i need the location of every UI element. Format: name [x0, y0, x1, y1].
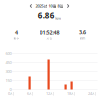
staticText: 3.6: [79, 29, 86, 36]
staticText: 300: [5, 69, 11, 74]
staticText: 6.86: [38, 10, 55, 21]
staticText: 24시: [88, 91, 96, 96]
staticText: 12시: [46, 91, 54, 96]
staticText: 600: [5, 51, 11, 56]
button[interactable]: Previous day: [29, 3, 32, 9]
staticText: km/h: [79, 37, 85, 40]
staticText: km: [55, 15, 61, 21]
button[interactable]: Next day: [66, 3, 69, 9]
staticText: 횟수: [13, 37, 19, 40]
staticText: 2025년 10월 8일: [35, 3, 63, 9]
staticText: 0시: [8, 91, 14, 96]
staticText: 150: [5, 78, 11, 83]
staticText: 0: [9, 87, 11, 92]
staticText: 4: [15, 29, 18, 36]
staticText: 01:52:48: [39, 29, 59, 36]
staticText: 450: [5, 60, 11, 65]
staticText: 시간: [46, 37, 52, 40]
staticText: 6시: [27, 91, 33, 96]
staticText: 18시: [67, 91, 75, 96]
